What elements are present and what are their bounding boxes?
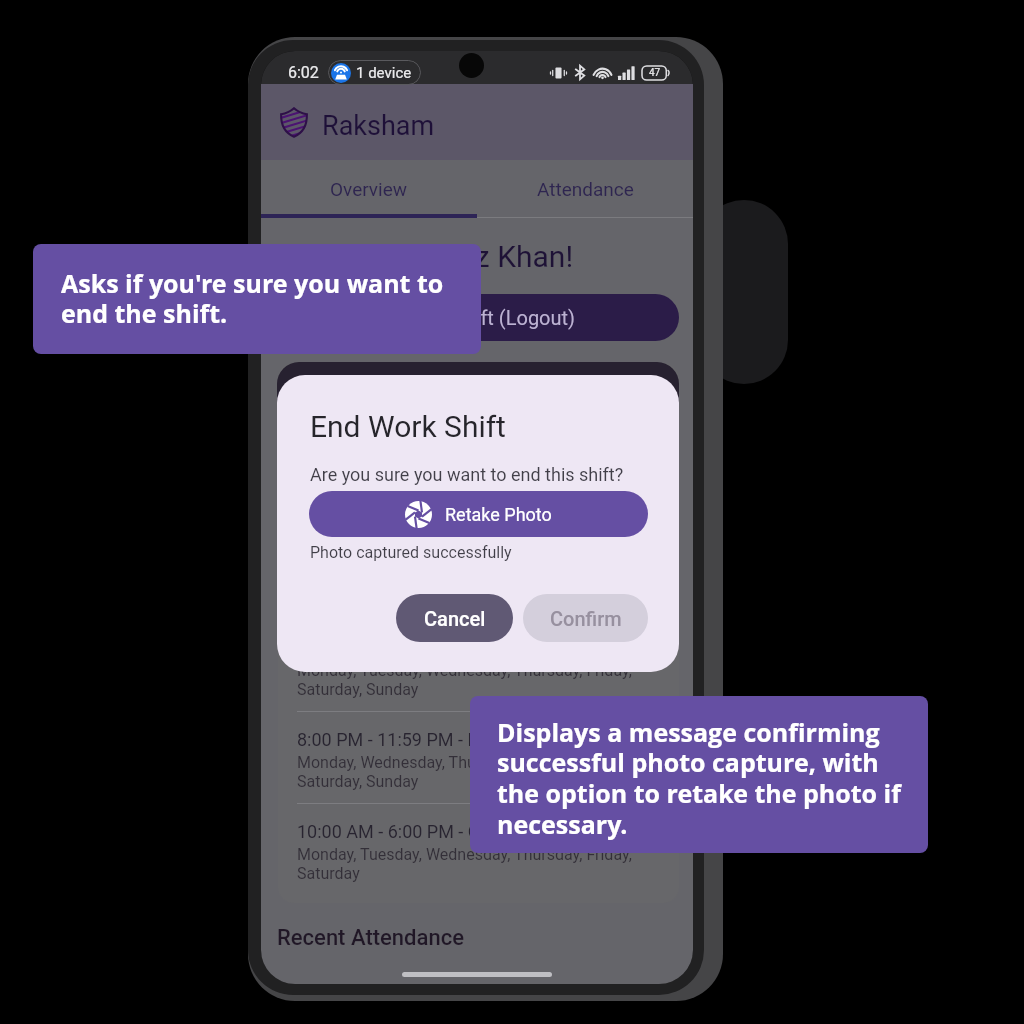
staticText: 6:02 — [288, 63, 319, 82]
other: Raksham logo — [280, 107, 308, 137]
staticText: Welcome, Aftaz Khan! — [281, 239, 574, 274]
staticText: Monday, Wednesday, Thursday, Friday, Sat… — [297, 753, 567, 790]
button[interactable]: End Shift (Logout) — [276, 294, 679, 341]
staticText: Monday, Tuesday, Wednesday, Thursday, Fr… — [297, 661, 632, 698]
staticText: Retake Photo — [445, 504, 552, 525]
other: Cast, 1 device connected — [331, 60, 412, 85]
staticText: Attendance — [537, 178, 634, 200]
staticText: Cancel — [424, 607, 486, 630]
staticText: Monday, Tuesday, Wednesday, Thursday, Fr… — [297, 845, 632, 882]
button[interactable]: Confirm — [523, 594, 648, 642]
staticText: 47 — [649, 67, 661, 79]
staticText: 8:00 PM - 11:59 PM - Night — [297, 729, 511, 750]
staticText: End Shift (Logout) — [414, 306, 576, 329]
staticText: Overview — [330, 178, 408, 200]
staticText: End Work Shift — [310, 409, 506, 444]
staticText: Asks if you're sure you want to end the … — [61, 266, 453, 331]
staticText: 9:00 AM - 5:00 PM - Day — [297, 637, 488, 658]
button[interactable]: Attendance — [477, 160, 693, 218]
staticText: 1 device — [356, 64, 412, 82]
staticText: Are you sure you want to end this shift? — [310, 464, 624, 485]
staticText: Raksham — [322, 110, 435, 142]
staticText: Confirm — [550, 607, 622, 630]
staticText: 10:00 AM - 6:00 PM - General — [297, 821, 530, 842]
staticText: Photo captured successfully — [310, 543, 512, 562]
staticText: Recent Attendance — [277, 925, 464, 951]
staticText: Displays a message confirming successful… — [497, 715, 909, 842]
button[interactable]: Overview — [261, 160, 477, 218]
button[interactable]: Retake Photo — [309, 491, 648, 537]
button[interactable]: Cancel — [396, 594, 513, 642]
